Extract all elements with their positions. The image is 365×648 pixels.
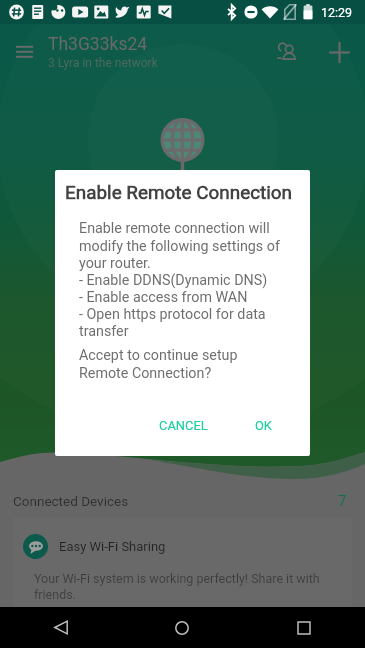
button[interactable]: Recent apps <box>243 607 365 648</box>
staticText: 3 Lyra in the network <box>48 56 158 70</box>
staticText: 12:29 <box>321 5 353 20</box>
button[interactable]: OK <box>245 410 282 441</box>
button[interactable]: Back <box>0 607 121 648</box>
staticText: CANCEL <box>159 418 208 433</box>
staticText: Th3G33ks24 <box>48 34 148 55</box>
button[interactable]: Add device <box>313 26 365 78</box>
staticText: OK <box>255 418 272 433</box>
staticText: Connected Devices <box>13 493 129 509</box>
button[interactable]: Easy Wi-Fi Sharing <box>13 518 352 628</box>
button[interactable]: Open navigation menu <box>0 28 48 76</box>
staticText: Accept to continue setup Remote Connecti… <box>79 347 238 381</box>
staticText: Easy Wi-Fi Sharing <box>59 539 166 554</box>
staticText: Enable remote connection will modify the… <box>79 220 300 339</box>
staticText: 7 <box>338 492 347 510</box>
button[interactable]: CANCEL <box>149 410 218 441</box>
button[interactable]: Home <box>121 607 243 648</box>
button[interactable]: Network members <box>261 26 313 78</box>
staticText: Your Wi-Fi system is working perfectly! … <box>34 571 346 603</box>
staticText: Enable Remote Connection <box>65 181 293 203</box>
